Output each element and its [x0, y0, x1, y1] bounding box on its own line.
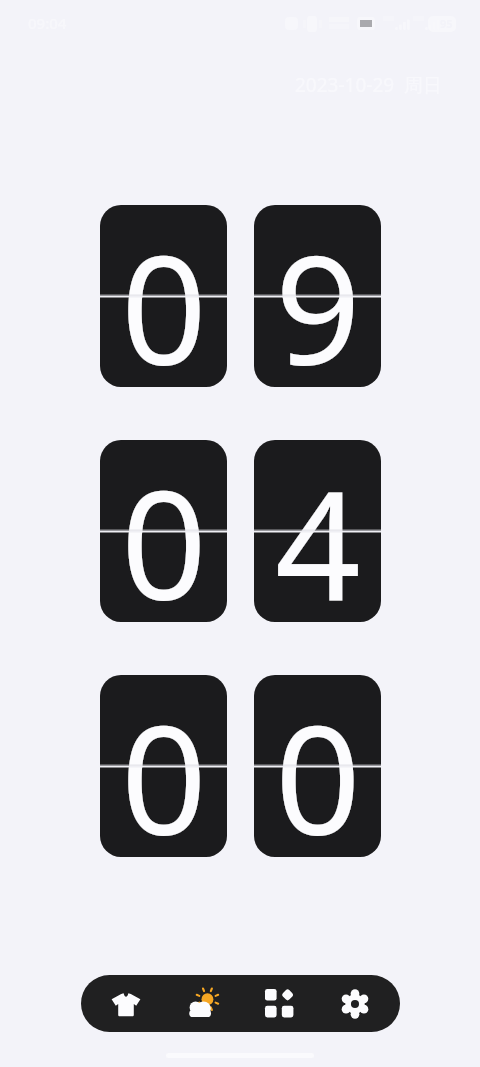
button[interactable]: Settings	[324, 975, 386, 1032]
button[interactable]: 0	[100, 205, 227, 387]
button[interactable]: 9	[254, 205, 381, 387]
staticText: 0	[121, 675, 207, 857]
staticText: 0	[121, 440, 207, 622]
button[interactable]: 0	[100, 675, 227, 857]
staticText: 0	[121, 205, 207, 387]
button[interactable]: Clothes	[95, 975, 157, 1032]
button[interactable]: 0	[100, 440, 227, 622]
button[interactable]: Apps	[248, 975, 310, 1032]
button[interactable]: 4	[254, 440, 381, 622]
staticText: 0	[275, 675, 361, 857]
staticText: 9	[275, 205, 361, 387]
button[interactable]: 0	[254, 675, 381, 857]
staticText: 4	[275, 440, 361, 622]
button[interactable]: Weather	[171, 975, 233, 1032]
